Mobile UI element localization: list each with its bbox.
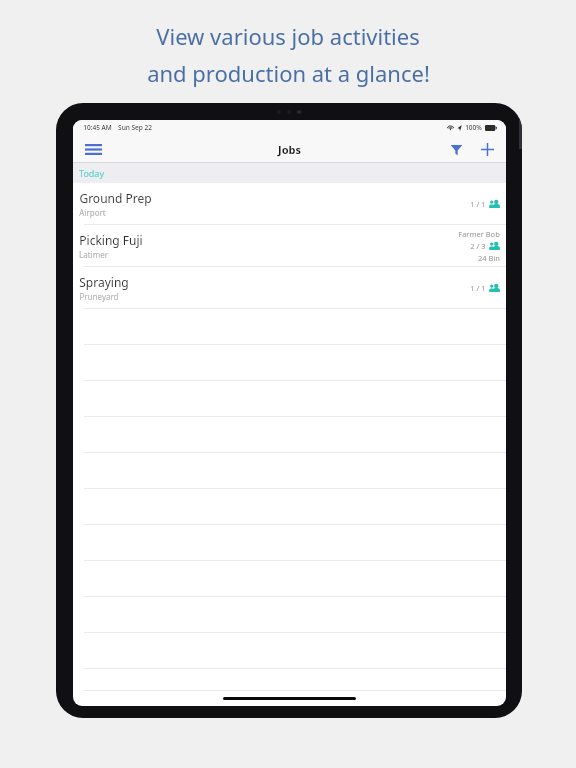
button[interactable]: Picking Fuji (73, 225, 506, 267)
staticText: Latimer (79, 249, 108, 260)
button[interactable]: Ground Prep (73, 183, 506, 225)
staticText: and production at a glance! (147, 58, 430, 88)
staticText: 100% (465, 123, 482, 132)
staticText: 10:45 AM (83, 123, 112, 132)
staticText: 1 / 1 (470, 199, 486, 209)
staticText: Jobs (278, 142, 301, 157)
staticText: 1 / 1 (470, 283, 486, 293)
staticText: 24 Bin (478, 253, 500, 263)
button[interactable]: Add job (473, 135, 501, 163)
staticText: Farmer Bob (458, 229, 500, 239)
staticText: Ground Prep (79, 190, 152, 206)
staticText: Pruneyard (79, 291, 119, 302)
staticText: View various job activities (156, 21, 420, 51)
button[interactable]: Menu (78, 135, 108, 163)
staticText: 2 / 3 (470, 241, 486, 251)
button[interactable]: Spraying (73, 267, 506, 309)
button[interactable]: Filter (442, 135, 470, 163)
staticText: Today (79, 167, 104, 179)
staticText: Spraying (79, 274, 129, 290)
staticText: Picking Fuji (79, 232, 143, 248)
staticText: Airport (79, 207, 106, 218)
staticText: Sun Sep 22 (118, 123, 152, 132)
